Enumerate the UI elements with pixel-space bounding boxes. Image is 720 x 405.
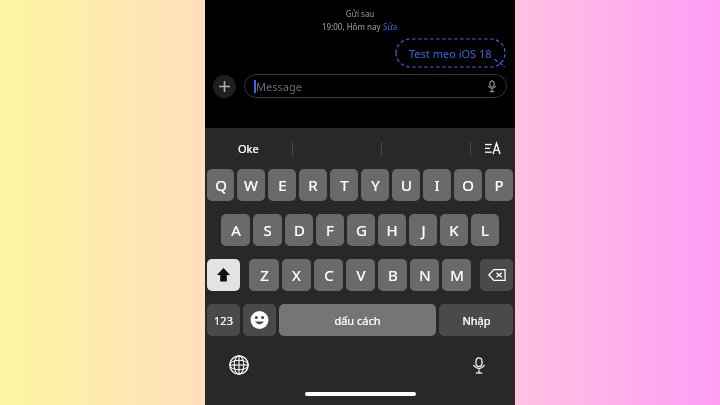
button[interactable]: P: [485, 169, 513, 201]
staticText: J: [421, 220, 426, 240]
staticText: Z: [260, 265, 269, 285]
button[interactable]: Audio message: [485, 79, 499, 93]
button[interactable]: T: [330, 169, 358, 201]
staticText: C: [324, 265, 334, 285]
staticText: K: [449, 220, 459, 240]
staticText: Nhập: [462, 313, 491, 328]
button[interactable]: Formatting: [471, 128, 515, 169]
staticText: Sửa: [383, 21, 398, 32]
staticText: Message: [256, 79, 302, 94]
staticText: S: [263, 220, 272, 240]
button[interactable]: F: [316, 214, 344, 246]
button[interactable]: R: [299, 169, 327, 201]
button[interactable]: Add attachment: [213, 75, 236, 98]
staticText: L: [481, 220, 489, 240]
button[interactable]: E: [268, 169, 296, 201]
staticText: F: [326, 220, 334, 240]
staticText: Y: [371, 175, 380, 195]
button[interactable]: C: [314, 259, 343, 291]
staticText: G: [356, 220, 367, 240]
staticText: 123: [214, 313, 233, 328]
button[interactable]: Dictation: [469, 355, 489, 375]
staticText: H: [386, 220, 398, 240]
staticText: E: [278, 175, 287, 195]
button[interactable]: Sửa: [383, 21, 398, 32]
staticText: M: [450, 265, 464, 285]
button[interactable]: Backspace: [480, 259, 513, 291]
button[interactable]: D: [285, 214, 313, 246]
button[interactable]: G: [347, 214, 375, 246]
button[interactable]: H: [378, 214, 406, 246]
button[interactable]: U: [392, 169, 420, 201]
button[interactable]: Message: [244, 74, 507, 98]
staticText: W: [244, 175, 258, 195]
button[interactable]: 123: [207, 304, 240, 336]
button[interactable]: A: [221, 214, 250, 246]
staticText: R: [308, 175, 318, 195]
button[interactable]: Shift: [207, 259, 240, 291]
button[interactable]: K: [440, 214, 468, 246]
staticText: V: [356, 265, 366, 285]
staticText: dấu cách: [334, 313, 381, 328]
button[interactable]: L: [471, 214, 499, 246]
button[interactable]: Emoji: [243, 304, 276, 336]
staticText: P: [494, 175, 504, 195]
button[interactable]: S: [253, 214, 282, 246]
staticText: Test mẹo iOS 18: [409, 46, 492, 61]
staticText: X: [292, 265, 301, 285]
staticText: O: [462, 175, 474, 195]
button[interactable]: Nhập: [439, 304, 513, 336]
button[interactable]: Change keyboard: [229, 355, 249, 375]
button[interactable]: N: [410, 259, 439, 291]
button[interactable]: O: [454, 169, 482, 201]
staticText: B: [388, 265, 398, 285]
button[interactable]: M: [442, 259, 471, 291]
staticText: T: [340, 175, 349, 195]
button[interactable]: Y: [361, 169, 389, 201]
staticText: A: [231, 220, 241, 240]
button[interactable]: J: [409, 214, 437, 246]
button[interactable]: Q: [207, 169, 234, 201]
staticText: I: [434, 175, 440, 195]
staticText: Q: [215, 175, 227, 195]
button[interactable]: X: [282, 259, 311, 291]
button[interactable]: dấu cách: [279, 304, 436, 336]
staticText: Oke: [238, 141, 259, 156]
button[interactable]: Oke: [205, 128, 292, 169]
button[interactable]: V: [346, 259, 375, 291]
staticText: 19:00, Hôm nay: [322, 21, 383, 32]
button[interactable]: W: [237, 169, 265, 201]
staticText: D: [294, 220, 305, 240]
button[interactable]: Z: [249, 259, 279, 291]
button[interactable]: Test mẹo iOS 18: [396, 39, 505, 67]
staticText: U: [401, 175, 412, 195]
staticText: N: [419, 265, 431, 285]
button[interactable]: I: [423, 169, 451, 201]
staticText: Gửi sau: [205, 8, 515, 19]
button[interactable]: B: [378, 259, 407, 291]
